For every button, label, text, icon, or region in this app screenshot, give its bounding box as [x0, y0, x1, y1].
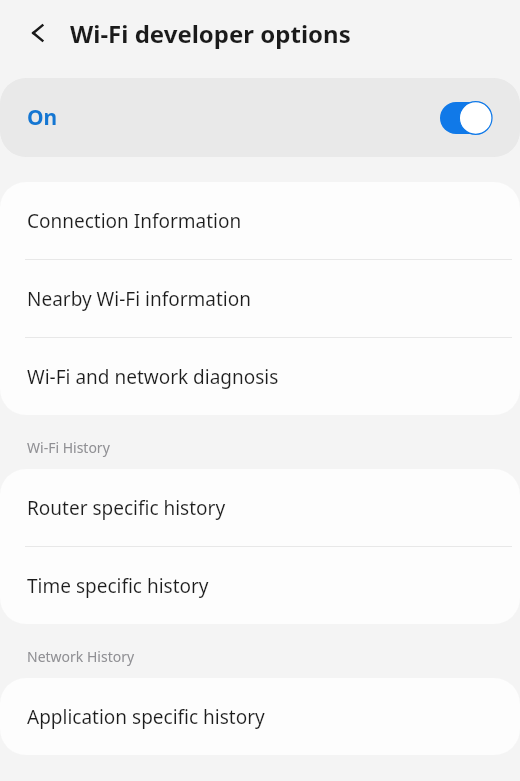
staticText: On	[27, 103, 58, 132]
staticText: Router specific history	[27, 495, 226, 521]
button[interactable]: Wi-Fi and network diagnosis	[0, 338, 520, 415]
button[interactable]: Router specific history	[0, 469, 520, 546]
staticText: Wi-Fi developer options	[70, 17, 351, 50]
staticText: Connection Information	[27, 208, 242, 234]
button[interactable]: Time specific history	[0, 547, 520, 624]
staticText: Network History	[27, 647, 135, 666]
staticText: Time specific history	[27, 573, 209, 599]
button[interactable]: Connection Information	[0, 182, 520, 259]
button[interactable]: On	[0, 78, 520, 157]
button[interactable]: Application specific history	[0, 678, 520, 755]
staticText: Wi-Fi History	[27, 438, 110, 457]
staticText: Nearby Wi-Fi information	[27, 286, 251, 312]
button[interactable]: Back	[16, 9, 64, 57]
button[interactable]: Wi-Fi developer options toggle, on	[440, 102, 492, 134]
button[interactable]: Nearby Wi-Fi information	[0, 260, 520, 337]
staticText: Application specific history	[27, 704, 265, 730]
staticText: Wi-Fi and network diagnosis	[27, 364, 279, 390]
